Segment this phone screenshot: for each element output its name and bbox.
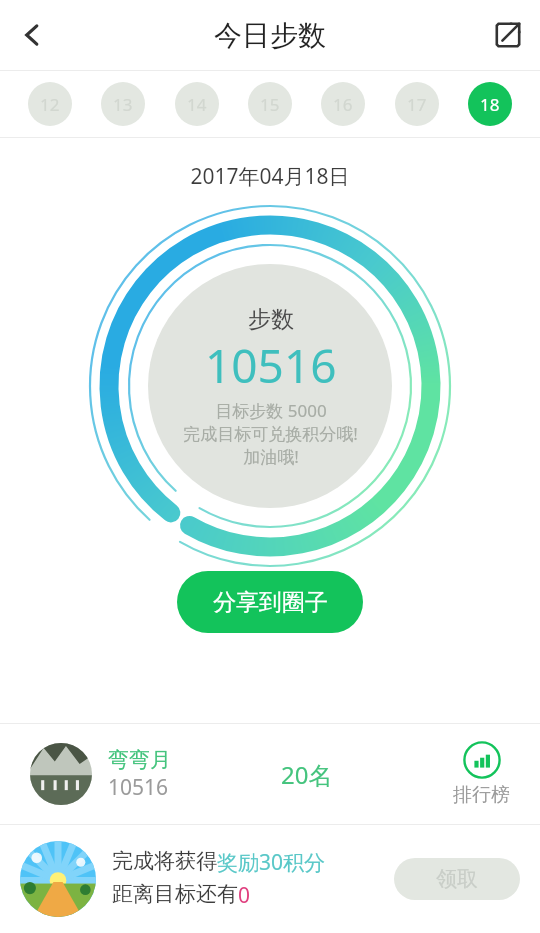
- staticText: 领取: [436, 866, 478, 892]
- button[interactable]: 排行榜: [453, 741, 510, 807]
- staticText: 完成目标可兑换积分哦!: [183, 422, 358, 445]
- button[interactable]: 返回: [0, 0, 64, 70]
- staticText: 18: [480, 93, 500, 116]
- staticText: 12: [40, 93, 60, 116]
- staticText: 目标步数 5000: [215, 399, 327, 422]
- button[interactable]: 分享到圈子: [177, 571, 363, 633]
- staticText: 13: [113, 93, 133, 116]
- staticText: 今日步数: [214, 18, 326, 53]
- button[interactable]: 18: [468, 82, 512, 126]
- staticText: 0: [238, 881, 251, 910]
- button[interactable]: 16: [321, 82, 365, 126]
- staticText: 奖励30积分: [217, 848, 326, 877]
- button[interactable]: 17: [395, 82, 439, 126]
- staticText: 20名: [281, 758, 333, 791]
- staticText: 步数: [248, 305, 294, 334]
- staticText: 10516: [108, 773, 169, 802]
- button[interactable]: 12: [28, 82, 72, 126]
- staticText: 16: [333, 93, 353, 116]
- staticText: 完成将获得: [112, 848, 217, 874]
- staticText: 弯弯月: [108, 747, 171, 773]
- staticText: 2017年04月18日: [0, 162, 540, 191]
- button[interactable]: 13: [101, 82, 145, 126]
- staticText: 14: [187, 93, 207, 116]
- staticText: 排行榜: [453, 783, 510, 807]
- staticText: 分享到圈子: [213, 588, 328, 617]
- button[interactable]: 弯弯月: [0, 724, 540, 824]
- staticText: 17: [407, 93, 427, 116]
- button[interactable]: 领取: [394, 858, 520, 900]
- staticText: 15: [260, 93, 280, 116]
- staticText: 距离目标还有: [112, 881, 238, 907]
- staticText: 加油哦!: [243, 445, 299, 468]
- button[interactable]: 15: [248, 82, 292, 126]
- staticText: 10516: [205, 334, 337, 397]
- button[interactable]: 14: [175, 82, 219, 126]
- button[interactable]: 分享: [476, 0, 540, 70]
